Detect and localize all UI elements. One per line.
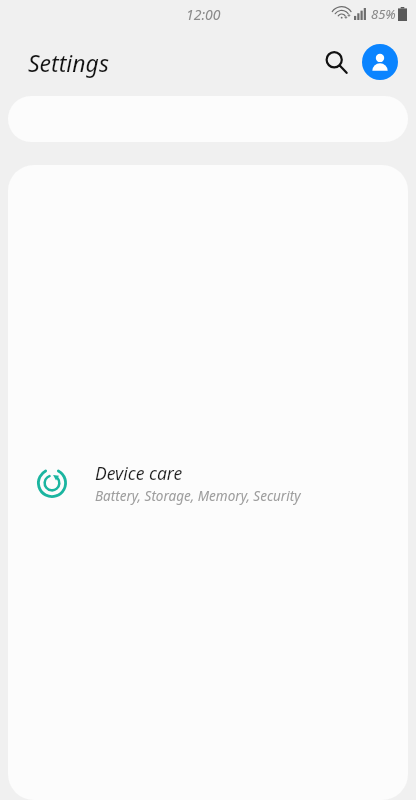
staticText: Battery, Storage, Memory, Security xyxy=(95,487,301,505)
staticText: Settings xyxy=(28,47,314,78)
button[interactable]: Search xyxy=(314,40,358,84)
staticText: 85% xyxy=(371,5,396,23)
staticText: Device care xyxy=(95,461,183,485)
button[interactable]: Account xyxy=(362,44,398,80)
staticText: 12:00 xyxy=(186,5,221,24)
button[interactable]: Device care xyxy=(8,165,408,800)
